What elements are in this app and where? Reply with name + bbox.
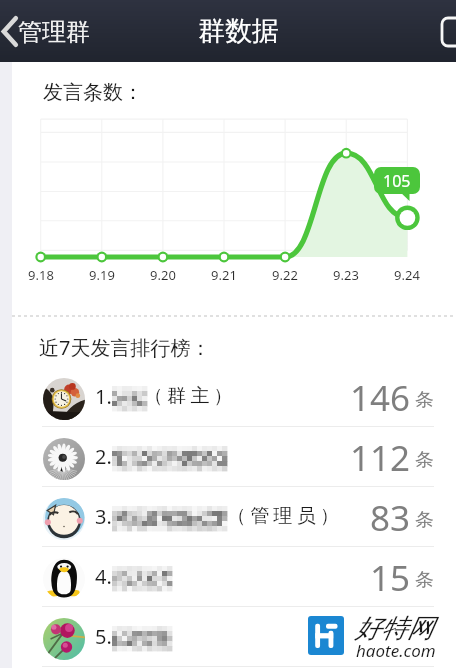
button[interactable]: 4. bbox=[12, 547, 456, 607]
staticText: 发言条数： bbox=[43, 80, 143, 105]
staticText: 83 bbox=[290, 494, 410, 542]
button[interactable]: 5. bbox=[12, 607, 456, 667]
staticText: 条 bbox=[415, 448, 434, 472]
staticText: （群主） bbox=[144, 384, 237, 408]
staticText: 条 bbox=[415, 388, 434, 412]
staticText: 15 bbox=[290, 554, 410, 602]
staticText: 5. bbox=[95, 623, 112, 650]
staticText: 好特网 bbox=[355, 612, 433, 645]
button[interactable]: 1. bbox=[12, 367, 456, 427]
staticText: 4. bbox=[95, 563, 112, 590]
staticText: 群数据 bbox=[198, 14, 279, 48]
staticText: 近7天发言排行榜： bbox=[39, 334, 211, 361]
button[interactable]: 3. bbox=[12, 487, 456, 547]
button[interactable]: 105 bbox=[374, 167, 420, 194]
button[interactable]: 2. bbox=[12, 427, 456, 487]
staticText: 105 bbox=[383, 170, 411, 192]
staticText: 9.21 bbox=[203, 266, 245, 284]
staticText: 3. bbox=[95, 503, 112, 530]
staticText: 9.19 bbox=[81, 266, 123, 284]
button[interactable]: 管理群 bbox=[0, 16, 100, 47]
staticText: 1. bbox=[95, 383, 112, 410]
staticText: 9.20 bbox=[142, 266, 184, 284]
staticText: 条 bbox=[415, 508, 434, 532]
staticText: 9.23 bbox=[325, 266, 367, 284]
staticText: 112 bbox=[290, 434, 410, 482]
staticText: 9.18 bbox=[20, 266, 62, 284]
staticText: 9.22 bbox=[264, 266, 306, 284]
staticText: 146 bbox=[290, 374, 410, 422]
staticText: haote.com bbox=[356, 639, 436, 662]
button[interactable]: More options bbox=[442, 18, 456, 46]
staticText: （管理员） bbox=[225, 504, 341, 528]
staticText: 9.24 bbox=[386, 266, 428, 284]
staticText: 2. bbox=[95, 443, 112, 470]
staticText: 管理群 bbox=[18, 17, 90, 47]
staticText: 条 bbox=[415, 568, 434, 592]
